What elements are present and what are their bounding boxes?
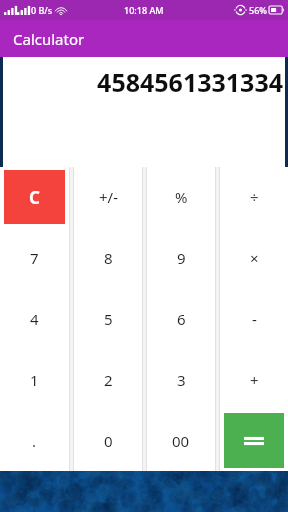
button[interactable]: Minus [220,288,288,349]
staticText: 9 [177,248,186,268]
button[interactable]: Plus [220,349,288,410]
staticText: % [175,187,188,207]
button[interactable]: . [0,410,69,471]
button[interactable]: 0 [74,410,142,471]
staticText: 1 [30,370,39,390]
button[interactable]: Multiply [220,227,288,288]
staticText: 56% [249,4,267,16]
staticText: 0 [104,431,113,451]
staticText: 4 [30,309,39,329]
button[interactable]: 5 [74,288,142,349]
button[interactable]: 6 [147,288,215,349]
button[interactable]: 7 [0,227,69,288]
button[interactable]: 00 [147,410,215,471]
staticText: 4584561331334 [97,65,283,99]
button[interactable]: +/- [74,167,142,227]
button[interactable]: 4 [0,288,69,349]
staticText: 5 [104,309,113,329]
button[interactable]: Equals [224,413,284,468]
staticText: + [250,370,259,390]
button[interactable]: 2 [74,349,142,410]
button[interactable]: 9 [147,227,215,288]
button[interactable]: C [4,170,65,224]
staticText: +/- [99,187,118,207]
staticText: 6 [177,309,186,329]
button[interactable]: 1 [0,349,69,410]
staticText: 7 [30,248,39,268]
button[interactable]: Divide [220,167,288,227]
staticText: 00 [172,431,190,451]
staticText: 8 [104,248,113,268]
staticText: Calculator [13,29,85,49]
staticText: 3 [177,370,186,390]
staticText: 0 B/s [31,4,53,16]
staticText: . [32,431,37,451]
staticText: C [29,186,40,209]
staticText: 10:18 AM [124,4,164,16]
button[interactable]: 8 [74,227,142,288]
staticText: ÷ [250,187,259,207]
staticText: 2 [104,370,113,390]
staticText: - [252,309,257,329]
staticText: × [250,248,259,268]
button[interactable]: % [147,167,215,227]
button[interactable]: 3 [147,349,215,410]
